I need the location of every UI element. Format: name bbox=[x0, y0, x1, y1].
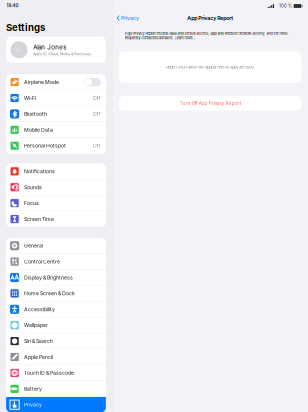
button[interactable]: Focus bbox=[6, 195, 106, 211]
staticText: Home Screen & Dock bbox=[24, 290, 75, 297]
button[interactable]: Turn Off App Privacy Report bbox=[119, 96, 301, 111]
button[interactable]: Display & Brightness bbox=[6, 270, 106, 285]
staticText: Wi-Fi bbox=[24, 95, 36, 101]
button[interactable]: Sounds bbox=[6, 179, 106, 195]
button[interactable]: Privacy bbox=[112, 13, 143, 23]
staticText: Bluetooth bbox=[24, 111, 47, 117]
staticText: General bbox=[24, 243, 43, 249]
staticText: Turn Off App Privacy Report bbox=[180, 101, 241, 106]
staticText: Settings bbox=[6, 22, 45, 33]
button[interactable]: Home Screen & Dock bbox=[6, 286, 106, 301]
staticText: Apple ID, iCloud, Media & Purchases bbox=[33, 52, 91, 56]
staticText: Screen Time bbox=[24, 216, 54, 222]
staticText: App Privacy Report bbox=[187, 15, 233, 21]
staticText: Touch ID & Passcode bbox=[24, 370, 74, 376]
button[interactable]: Bluetooth bbox=[6, 106, 106, 122]
button[interactable]: Privacy bbox=[6, 397, 106, 412]
staticText: Off bbox=[93, 143, 101, 149]
button[interactable]: Wi-Fi bbox=[6, 90, 106, 106]
staticText: 100 % bbox=[279, 3, 292, 9]
staticText: Apple Pencil bbox=[24, 354, 53, 360]
staticText: Personal Hotspot bbox=[24, 143, 66, 149]
button[interactable]: General bbox=[6, 238, 106, 253]
button[interactable]: Siri & Search bbox=[6, 333, 106, 349]
staticText: Mobile Data bbox=[24, 127, 53, 133]
staticText: Control Centre bbox=[24, 258, 60, 265]
staticText: Focus bbox=[24, 200, 39, 206]
button[interactable]: Airplane Mode bbox=[6, 74, 106, 90]
staticText: Airplane Mode bbox=[24, 79, 59, 85]
staticText: Display & Brightness bbox=[24, 274, 73, 281]
button[interactable]: Screen Time bbox=[6, 211, 106, 227]
staticText: AJ bbox=[15, 47, 22, 53]
button[interactable]: Wallpaper bbox=[6, 317, 106, 333]
button[interactable]: Touch ID & Passcode bbox=[6, 365, 106, 381]
button[interactable]: Control Centre bbox=[6, 254, 106, 269]
staticText: Notifications bbox=[24, 168, 55, 174]
button[interactable]: AJ bbox=[6, 37, 106, 63]
staticText: Accessibility bbox=[24, 306, 55, 312]
button[interactable]: Mobile Data bbox=[6, 122, 106, 137]
staticText: Off bbox=[93, 111, 101, 117]
staticText: Privacy bbox=[121, 15, 139, 21]
staticText: 19:40 bbox=[6, 3, 18, 8]
button[interactable]: Apple Pencil bbox=[6, 349, 106, 365]
button[interactable]: Accessibility bbox=[6, 302, 106, 317]
staticText: Wallpaper bbox=[24, 322, 48, 328]
staticText: Alan Jones bbox=[33, 43, 66, 51]
button[interactable]: Notifications bbox=[6, 164, 106, 179]
button[interactable]: Battery bbox=[6, 381, 106, 396]
staticText: Sounds bbox=[24, 184, 42, 190]
button[interactable]: Personal Hotspot bbox=[6, 138, 106, 153]
staticText: Privacy bbox=[24, 402, 42, 408]
staticText: Battery bbox=[24, 386, 42, 392]
staticText: Report information will appear here as a… bbox=[166, 65, 254, 69]
staticText: Siri & Search bbox=[24, 338, 53, 344]
staticText: Off bbox=[93, 95, 101, 101]
staticText: App Privacy Report records data and sens… bbox=[125, 31, 288, 40]
